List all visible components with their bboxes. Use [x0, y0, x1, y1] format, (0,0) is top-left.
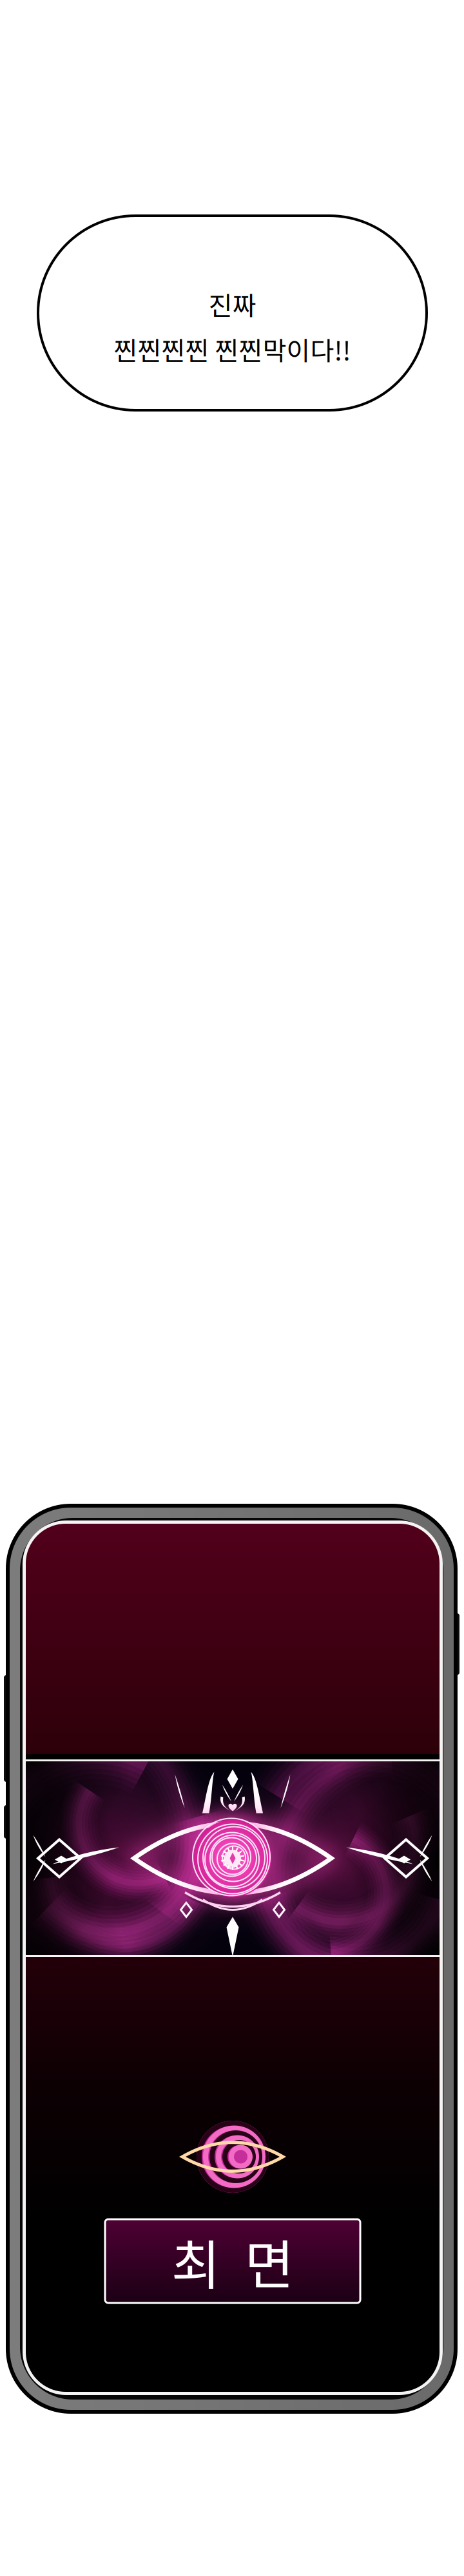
- button[interactable]: 최 면: [105, 2219, 360, 2303]
- staticText: 찐찐찐찐 찐찐막이다!!: [114, 330, 351, 368]
- staticText: 진짜: [208, 285, 256, 323]
- staticText: 최 면: [171, 2223, 294, 2300]
